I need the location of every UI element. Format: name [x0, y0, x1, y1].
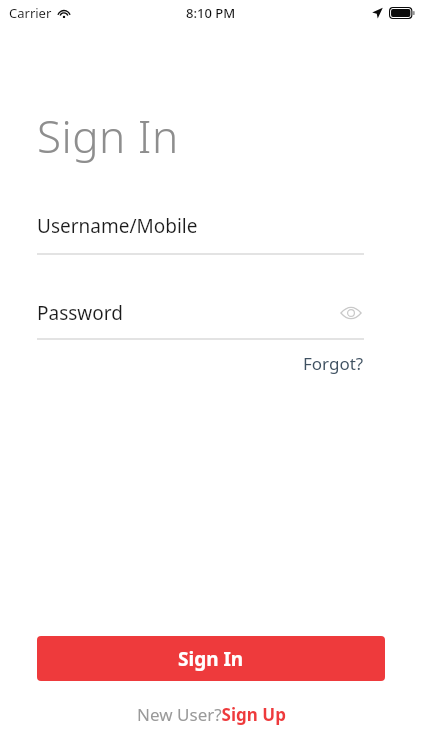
- staticText: Sign In: [37, 106, 179, 166]
- button[interactable]: Username/Mobile: [37, 213, 364, 255]
- button[interactable]: Forgot?: [303, 352, 364, 375]
- button[interactable]: Sign In: [37, 636, 385, 681]
- staticText: Carrier: [9, 4, 52, 22]
- button[interactable]: New User?Sign Up: [37, 703, 385, 726]
- staticText: 8:10 PM: [186, 4, 236, 22]
- staticText: Username/Mobile: [37, 213, 198, 239]
- staticText: Password: [37, 300, 123, 326]
- button[interactable]: Show password: [338, 300, 364, 326]
- staticText: Sign In: [178, 646, 244, 672]
- button[interactable]: Password: [37, 300, 364, 326]
- staticText: New User?Sign Up: [137, 703, 286, 726]
